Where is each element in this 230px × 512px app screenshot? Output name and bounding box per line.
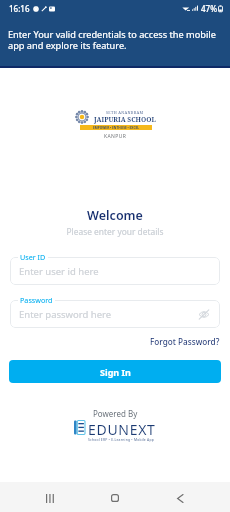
staticText: EDUNEXT	[88, 420, 156, 439]
staticText: Enter Your valid credentials to access t…	[8, 28, 216, 52]
staticText: User ID	[20, 252, 46, 262]
staticText: Welcome	[87, 207, 143, 224]
staticText: JAIPURIA SCHOOL	[94, 115, 156, 124]
staticText: KANPUR	[104, 133, 127, 140]
staticText: 47%	[201, 3, 217, 14]
staticText: Please enter your details	[66, 226, 164, 237]
staticText: Password	[20, 295, 53, 305]
button[interactable]: Toggle password visibility	[197, 307, 211, 321]
button[interactable]: Enter user id here	[10, 257, 220, 285]
button[interactable]: Forgot Password?	[149, 334, 221, 349]
staticText: School ERP • E-Learning • Mobile App	[88, 437, 154, 442]
button[interactable]: Home	[100, 483, 130, 512]
button[interactable]: Enter password here	[10, 300, 220, 328]
staticText: Powered By	[93, 408, 138, 419]
button[interactable]: Recents	[35, 483, 65, 512]
staticText: 16:16	[9, 3, 30, 14]
button[interactable]: Sign In	[9, 360, 221, 383]
staticText: EMPOWER • ENTHUSE • EXCEL	[93, 126, 140, 130]
staticText: SETH ANANDRAM	[106, 110, 144, 115]
staticText: Sign In	[100, 366, 131, 378]
staticText: Enter user id here	[19, 265, 99, 278]
staticText: Enter password here	[19, 308, 112, 321]
button[interactable]: Back	[165, 483, 195, 512]
